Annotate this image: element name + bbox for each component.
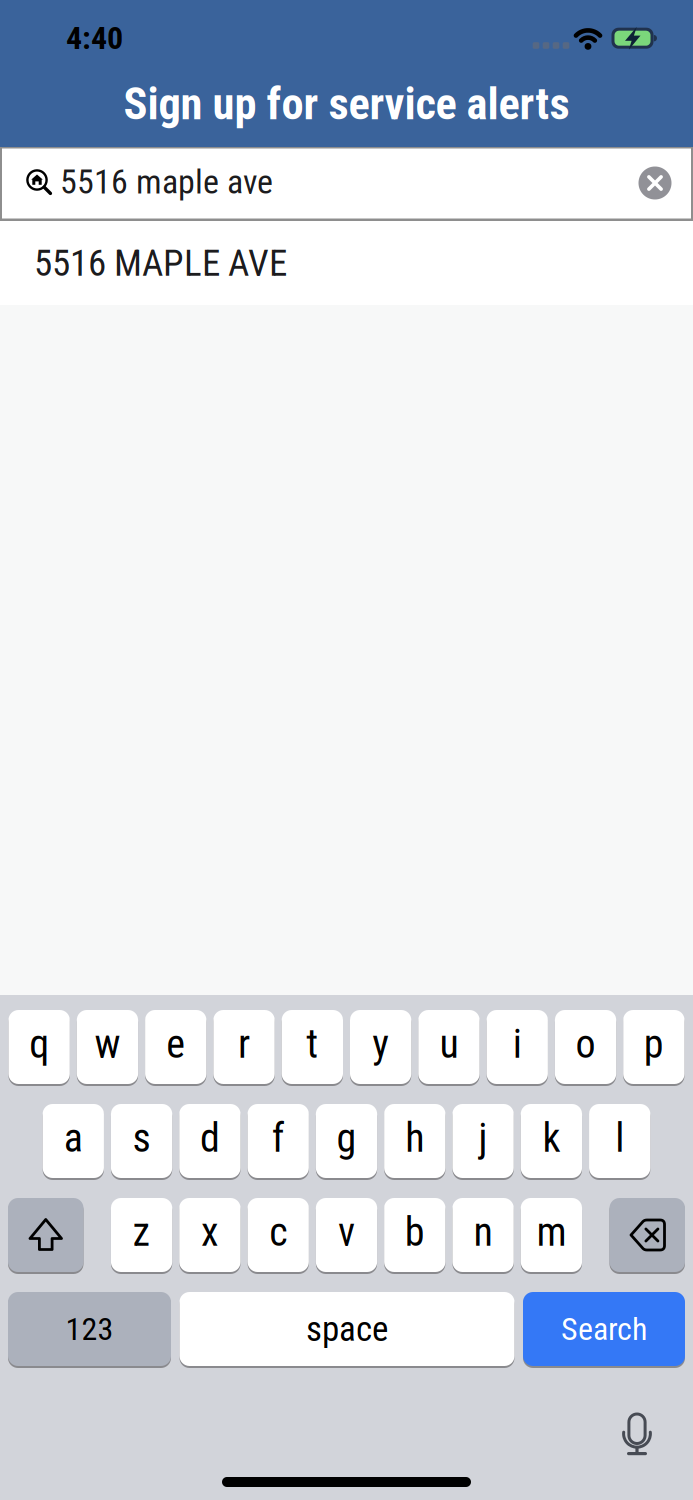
button[interactable]: h	[384, 1104, 445, 1178]
button[interactable]: q	[8, 1010, 70, 1084]
button[interactable]: x	[179, 1198, 240, 1272]
staticText: h	[405, 1115, 424, 1161]
button[interactable]: c	[247, 1198, 309, 1272]
staticText: v	[338, 1209, 355, 1255]
staticText: n	[474, 1209, 493, 1255]
staticText: o	[575, 1021, 595, 1067]
staticText: 123	[65, 1310, 113, 1348]
button[interactable]: d	[179, 1104, 240, 1178]
button[interactable]: u	[418, 1010, 480, 1084]
staticText: s	[133, 1115, 151, 1161]
staticText: e	[166, 1021, 185, 1067]
button[interactable]: y	[350, 1010, 411, 1084]
staticText: x	[201, 1209, 219, 1255]
staticText: j	[479, 1115, 488, 1161]
staticText: l	[615, 1115, 624, 1161]
staticText: z	[133, 1209, 151, 1255]
button[interactable]: Dictate	[615, 1408, 659, 1460]
button[interactable]: b	[384, 1198, 445, 1272]
staticText: c	[269, 1209, 287, 1255]
button[interactable]: j	[452, 1104, 514, 1178]
button[interactable]: e	[145, 1010, 206, 1084]
button[interactable]: l	[589, 1104, 650, 1178]
button[interactable]: s	[111, 1104, 172, 1178]
button[interactable]: g	[316, 1104, 377, 1178]
button[interactable]: Clear text	[638, 166, 671, 199]
staticText: 5516 MAPLE AVE	[34, 241, 287, 285]
button[interactable]: i	[487, 1010, 548, 1084]
button[interactable]: o	[555, 1010, 616, 1084]
button[interactable]: t	[282, 1010, 343, 1084]
staticText: Sign up for service alerts	[123, 78, 569, 130]
staticText: i	[513, 1021, 522, 1067]
staticText: 4:40	[66, 19, 123, 57]
staticText: y	[372, 1021, 389, 1067]
staticText: g	[336, 1115, 356, 1161]
staticText: t	[306, 1021, 318, 1067]
staticText: m	[536, 1209, 566, 1255]
staticText: b	[405, 1209, 425, 1255]
staticText: space	[306, 1308, 388, 1349]
staticText: k	[542, 1115, 560, 1161]
button[interactable]: m	[521, 1198, 582, 1272]
button[interactable]: 123	[8, 1292, 171, 1366]
button[interactable]: p	[623, 1010, 684, 1084]
button[interactable]: space	[179, 1292, 514, 1366]
button[interactable]: r	[213, 1010, 275, 1084]
staticText: Search	[561, 1310, 647, 1348]
button[interactable]: k	[521, 1104, 582, 1178]
button[interactable]: f	[247, 1104, 309, 1178]
staticText: w	[94, 1021, 120, 1067]
staticText: q	[29, 1021, 49, 1067]
staticText: 5516 maple ave	[60, 162, 273, 202]
button[interactable]: Delete	[609, 1198, 685, 1272]
button[interactable]: w	[77, 1010, 138, 1084]
button[interactable]: Search	[523, 1292, 685, 1366]
staticText: a	[64, 1115, 83, 1161]
staticText: u	[439, 1021, 458, 1067]
button[interactable]: v	[316, 1198, 377, 1272]
button[interactable]: 5516 MAPLE AVE	[0, 221, 693, 305]
button[interactable]: Shift	[8, 1198, 83, 1272]
staticText: r	[238, 1021, 250, 1067]
staticText: f	[272, 1115, 285, 1161]
staticText: p	[644, 1021, 664, 1067]
button[interactable]: n	[452, 1198, 514, 1272]
staticText: d	[200, 1115, 220, 1161]
button[interactable]: a	[43, 1104, 104, 1178]
button[interactable]: z	[111, 1198, 172, 1272]
button[interactable]: 5516 maple ave	[2, 148, 691, 218]
